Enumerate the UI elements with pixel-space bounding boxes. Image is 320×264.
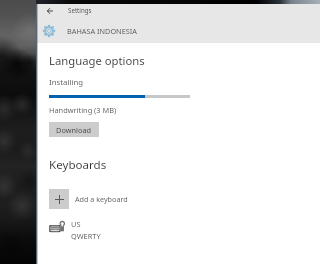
button[interactable]: BAHASA INDONESIA [37,19,320,42]
staticText: Keyboards [49,157,107,173]
staticText: Settings [68,6,92,14]
staticText: Language options [49,53,145,68]
staticText: BAHASA INDONESIA [67,26,137,36]
button[interactable]: Download [49,122,99,137]
button[interactable]: Back [37,4,53,20]
staticText: Download [56,125,92,135]
button[interactable]: Add a keyboard [49,189,320,209]
staticText: Add a keyboard [75,194,128,204]
staticText: Installing [49,77,84,88]
staticText: US [71,219,81,229]
staticText: QWERTY [71,231,101,241]
button[interactable]: US [49,219,320,241]
staticText: Handwriting (3 MB) [49,105,117,115]
